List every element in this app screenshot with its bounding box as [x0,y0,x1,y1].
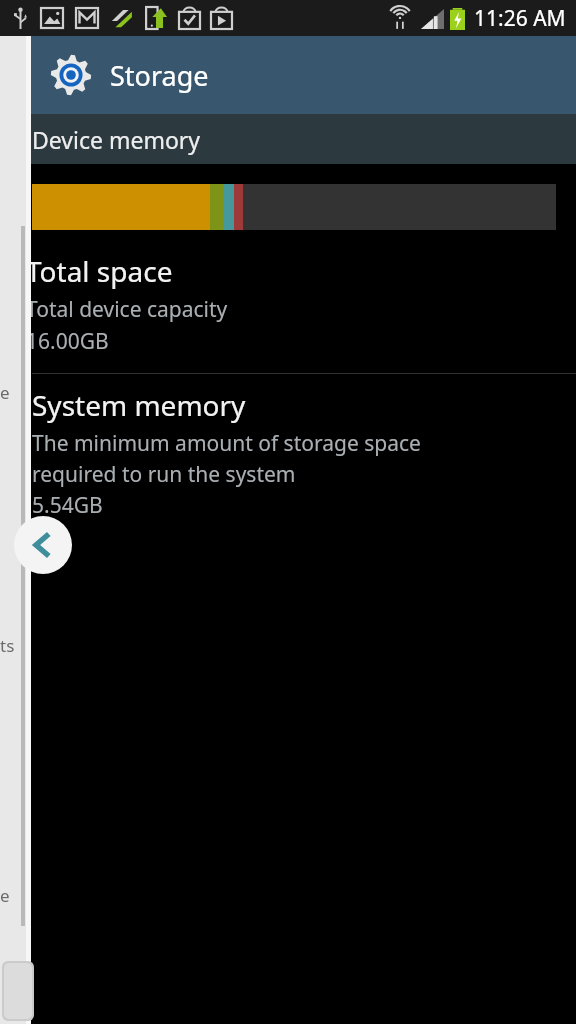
button[interactable] [0,36,26,1024]
staticText: e [0,381,10,404]
staticText: 16.00GB [26,327,109,356]
staticText: Total space [26,252,173,290]
staticText: e [0,884,10,907]
button[interactable]: Total space [0,252,576,356]
staticText: ts [0,634,15,657]
button[interactable]: System memory [0,374,576,1024]
staticText: 5.54GB [32,491,103,520]
staticText: required to run the system [32,460,296,489]
staticText: System memory [32,386,246,424]
button[interactable]: Storage [0,36,576,114]
staticText: Storage [110,57,209,94]
button[interactable]: Drawer action [2,961,34,1021]
staticText: The minimum amount of storage space [32,429,421,458]
staticText: 11:26 AM [474,4,566,33]
staticText: Device memory [32,124,201,155]
staticText: Total device capacity [26,295,228,324]
button[interactable]: Close navigation drawer [14,516,72,574]
